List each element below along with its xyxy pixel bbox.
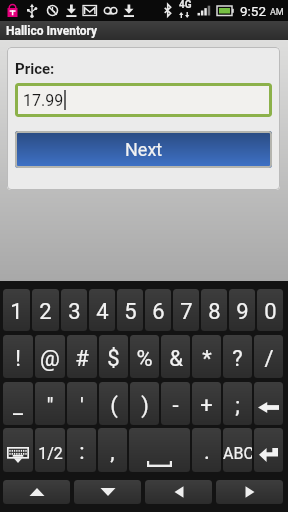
staticText: 6 xyxy=(152,299,165,325)
staticText: 3 xyxy=(68,299,81,325)
button[interactable]: - xyxy=(161,382,190,425)
staticText: ABC xyxy=(223,444,252,463)
button[interactable]: ABC xyxy=(223,428,252,472)
staticText: ( xyxy=(110,393,118,419)
button[interactable]: Switch keyboard xyxy=(3,428,33,472)
button[interactable]: 0 xyxy=(257,289,283,331)
button[interactable]: * xyxy=(192,335,221,378)
button[interactable]: ) xyxy=(130,382,159,425)
button[interactable]: Enter xyxy=(254,428,283,472)
staticText: * xyxy=(202,346,212,372)
button[interactable]: 4 xyxy=(89,289,115,331)
staticText: 1 xyxy=(10,299,23,325)
staticText: - xyxy=(172,393,179,419)
button[interactable]: ; xyxy=(223,382,252,425)
button[interactable]: 7 xyxy=(173,289,199,331)
staticText: 9:52 xyxy=(240,3,267,19)
button[interactable]: $ xyxy=(99,335,128,378)
staticText: 0 xyxy=(264,299,277,325)
staticText: " xyxy=(46,393,54,419)
button[interactable]: _ xyxy=(3,382,33,425)
button[interactable]: 5 xyxy=(117,289,143,331)
button[interactable]: Next xyxy=(15,131,272,168)
button[interactable]: ' xyxy=(67,382,97,425)
staticText: 9 xyxy=(236,299,249,325)
button[interactable]: , xyxy=(98,428,127,472)
staticText: . xyxy=(204,439,210,465)
button[interactable]: # xyxy=(67,335,97,378)
staticText: % xyxy=(136,346,153,372)
button[interactable]: Down xyxy=(74,480,141,504)
staticText: 2 xyxy=(39,299,52,325)
staticText: 4G xyxy=(179,0,192,11)
button[interactable]: ? xyxy=(223,335,252,378)
staticText: Next xyxy=(125,139,163,160)
button[interactable]: 9 xyxy=(229,289,255,331)
button[interactable]: Space xyxy=(129,428,190,472)
staticText: + xyxy=(200,393,213,419)
button[interactable]: % xyxy=(130,335,159,378)
button[interactable]: Left xyxy=(145,480,212,504)
staticText: 1/2 xyxy=(38,444,63,463)
button[interactable]: ! xyxy=(3,335,33,378)
button[interactable]: 3 xyxy=(61,289,87,331)
button[interactable]: Up xyxy=(3,480,70,504)
staticText: 5 xyxy=(124,299,137,325)
button[interactable]: 2 xyxy=(32,289,59,331)
button[interactable]: 1 xyxy=(3,289,30,331)
button[interactable]: : xyxy=(67,428,96,472)
staticText: 8 xyxy=(208,299,221,325)
staticText: ' xyxy=(80,393,84,419)
staticText: @ xyxy=(40,346,60,372)
staticText: & xyxy=(169,346,183,372)
button[interactable]: Backspace xyxy=(254,382,283,425)
staticText: ! xyxy=(15,346,21,372)
button[interactable]: @ xyxy=(35,335,65,378)
button[interactable]: + xyxy=(192,382,221,425)
button[interactable]: 17.99 xyxy=(15,83,272,117)
button[interactable]: & xyxy=(161,335,190,378)
staticText: $ xyxy=(107,346,120,372)
staticText: ) xyxy=(141,393,149,419)
button[interactable]: / xyxy=(254,335,283,378)
staticText: # xyxy=(75,346,89,372)
button[interactable]: 8 xyxy=(201,289,227,331)
staticText: ; xyxy=(235,393,240,419)
staticText: , xyxy=(110,439,115,465)
button[interactable]: Right xyxy=(216,480,283,504)
staticText: 17.99 xyxy=(23,91,64,110)
staticText: _ xyxy=(13,393,23,419)
staticText: : xyxy=(79,439,85,465)
button[interactable]: 6 xyxy=(145,289,171,331)
staticText: Hallico Inventory xyxy=(6,24,98,38)
staticText: Price: xyxy=(15,60,55,78)
staticText: 7 xyxy=(180,299,193,325)
staticText: ? xyxy=(232,346,243,372)
staticText: 4 xyxy=(96,299,109,325)
button[interactable]: ( xyxy=(99,382,128,425)
staticText: / xyxy=(264,346,274,372)
staticText: AM xyxy=(270,7,284,18)
button[interactable]: . xyxy=(192,428,221,472)
button[interactable]: " xyxy=(35,382,65,425)
button[interactable]: 1/2 xyxy=(35,428,65,472)
